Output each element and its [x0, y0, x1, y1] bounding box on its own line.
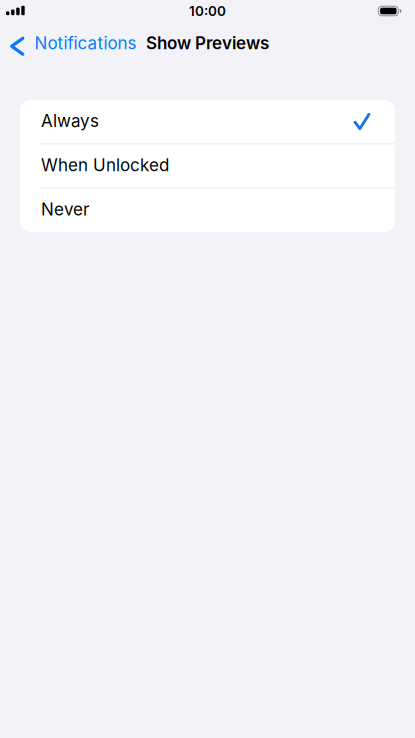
staticText: When Unlocked: [41, 155, 169, 175]
button[interactable]: Always: [20, 100, 395, 143]
staticText: 10:00: [189, 3, 226, 19]
button[interactable]: Notifications: [0, 30, 136, 56]
staticText: Always: [41, 110, 99, 131]
button[interactable]: When Unlocked: [20, 144, 395, 188]
staticText: Never: [41, 199, 89, 220]
staticText: Show Previews: [146, 33, 269, 53]
staticText: Notifications: [34, 33, 136, 53]
button[interactable]: Never: [20, 188, 395, 232]
